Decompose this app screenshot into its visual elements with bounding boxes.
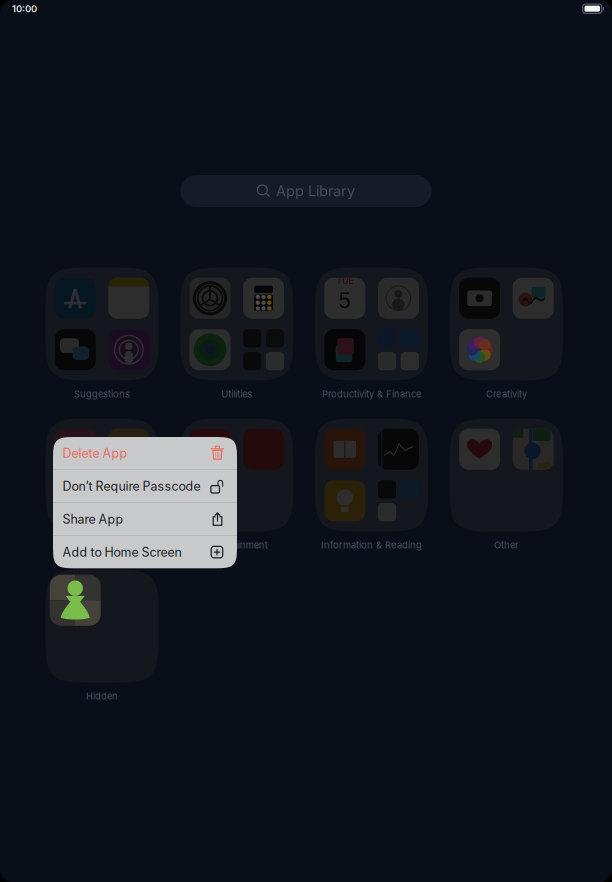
staticText: 5 <box>338 287 351 314</box>
button[interactable]: App Library <box>180 175 431 207</box>
staticText: Don’t Require Passcode <box>62 479 200 494</box>
button[interactable]: Other <box>450 418 563 551</box>
button[interactable]: Entertainment <box>180 418 293 551</box>
staticText: TUE <box>336 276 353 286</box>
staticText: Utilities <box>221 388 252 400</box>
staticText: Productivity & Finance <box>322 388 421 400</box>
staticText: Entertainment <box>206 539 268 551</box>
button[interactable]: Add to Home Screen <box>53 536 237 568</box>
staticText: Other <box>494 539 519 551</box>
button[interactable]: Creativity <box>450 267 563 400</box>
staticText: Creativity <box>486 388 527 400</box>
staticText: Suggestions <box>74 388 130 400</box>
button[interactable]: Don’t Require Passcode <box>53 470 237 502</box>
staticText: App Library <box>276 182 355 200</box>
button[interactable]: Social <box>45 418 158 551</box>
staticText: Information & Reading <box>321 539 422 551</box>
button[interactable]: Information & Reading <box>315 418 428 551</box>
button[interactable]: Utilities <box>180 267 293 400</box>
staticText: Hidden <box>86 690 118 702</box>
button[interactable]: Share App <box>53 503 237 535</box>
staticText: Delete App <box>62 446 127 461</box>
button[interactable]: Delete App <box>53 437 237 469</box>
staticText: 10:00 <box>12 3 37 14</box>
button[interactable]: Hidden <box>45 569 158 702</box>
button[interactable]: TUE <box>315 267 428 400</box>
staticText: Add to Home Screen <box>62 545 181 560</box>
button[interactable]: Suggestions <box>45 267 158 400</box>
staticText: Social <box>89 539 115 551</box>
staticText: Share App <box>62 512 123 527</box>
